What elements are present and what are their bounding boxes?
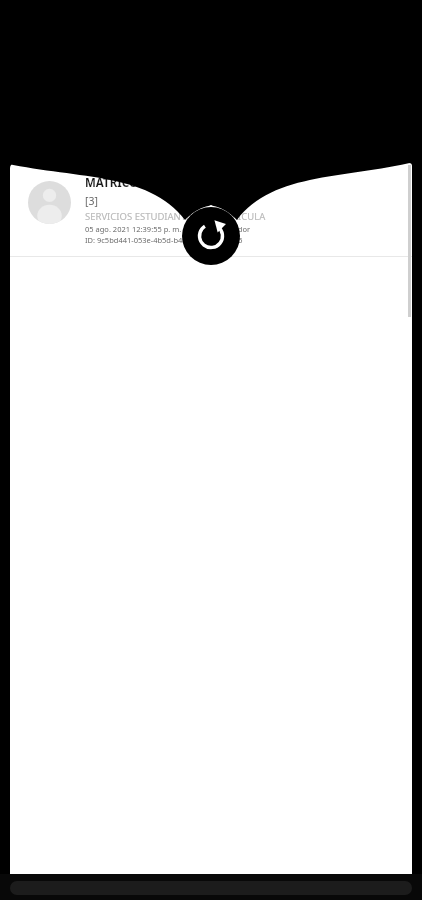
staticText: MATRICULA — [85, 175, 153, 191]
staticText: [3] — [85, 194, 98, 208]
staticText: ID: 9c5bd441-053e-4b5d-b4f2-0d71a3c9e815 — [85, 235, 243, 245]
staticText: SERVICIOS ESTUDIANTILES - MATRÍCULA — [85, 210, 266, 223]
staticText: 05 ago. 2021 12:39:55 p. m. por: Adminis… — [85, 224, 251, 234]
button[interactable]: MATRICULA — [10, 163, 412, 255]
